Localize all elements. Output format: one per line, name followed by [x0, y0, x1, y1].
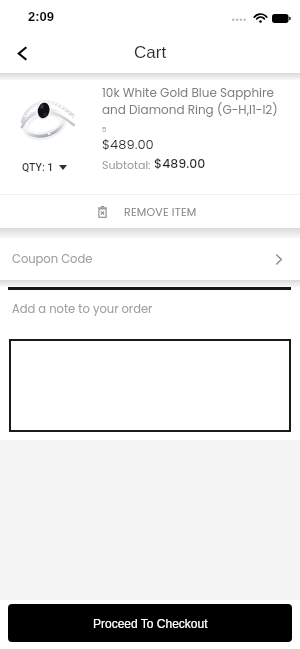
staticText: $489.00: [102, 135, 154, 153]
staticText: Proceed To Checkout: [93, 617, 208, 630]
staticText: and Diamond Ring (G-H,I1-I2): [102, 101, 278, 118]
staticText: $489.00: [154, 155, 206, 172]
staticText: Subtotal:: [102, 157, 154, 172]
staticText: 2:09: [28, 9, 55, 24]
button[interactable]: Proceed To Checkout: [8, 604, 292, 642]
staticText: QTY: 1: [22, 161, 54, 173]
staticText: REMOVE ITEM: [124, 204, 197, 219]
staticText: Add a note to your order: [12, 301, 153, 317]
staticText: Coupon Code: [12, 251, 93, 267]
button[interactable]: Back: [4, 35, 40, 71]
button[interactable]: REMOVE ITEM: [0, 195, 300, 228]
button[interactable]: Coupon Code: [0, 238, 300, 280]
button[interactable]: [9, 339, 291, 432]
staticText: 10k White Gold Blue Sapphire: [102, 84, 274, 101]
staticText: 5: [102, 125, 107, 135]
staticText: Cart: [134, 43, 167, 62]
